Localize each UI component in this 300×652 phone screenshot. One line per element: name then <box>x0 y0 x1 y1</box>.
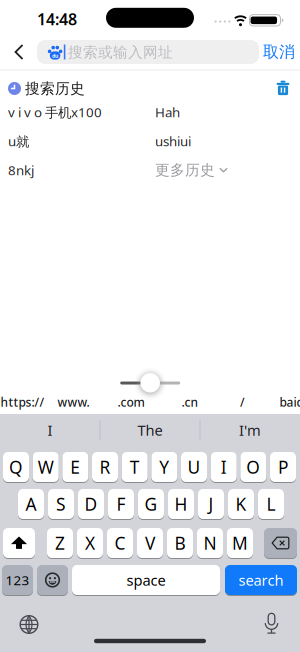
button[interactable]: I'm <box>202 416 298 444</box>
button[interactable]: G <box>138 489 164 519</box>
staticText: L <box>266 492 275 515</box>
button[interactable]: https:// <box>0 394 44 410</box>
button[interactable]: ushiui <box>155 129 295 153</box>
staticText: H <box>174 492 187 515</box>
staticText: J <box>208 492 213 515</box>
button[interactable]: baidu.com <box>279 394 300 410</box>
staticText: 更多历史 <box>155 161 215 179</box>
button[interactable]: J <box>198 489 224 519</box>
button[interactable]: search <box>225 565 297 595</box>
staticText: X <box>85 531 95 554</box>
button[interactable]: www. <box>57 394 89 410</box>
staticText: www. <box>57 394 89 410</box>
button[interactable]: Hah <box>155 100 295 124</box>
staticText: I'm <box>239 420 261 440</box>
staticText: P <box>278 455 288 478</box>
button[interactable]: .cn <box>181 394 198 410</box>
button[interactable]: P <box>270 452 296 482</box>
staticText: F <box>116 492 125 515</box>
staticText: 搜索或输入网址 <box>68 43 173 61</box>
staticText: V <box>145 531 155 554</box>
button[interactable]: Shift <box>3 528 35 558</box>
staticText: G <box>144 492 157 515</box>
button[interactable]: / <box>240 394 245 410</box>
button[interactable]: Q <box>3 452 29 482</box>
staticText: U <box>187 455 200 478</box>
staticText: 14:48 <box>37 8 77 30</box>
staticText: W <box>38 455 54 478</box>
staticText: Z <box>55 531 65 554</box>
staticText: T <box>130 455 140 478</box>
staticText: The <box>137 420 162 440</box>
staticText: C <box>114 531 125 554</box>
button[interactable]: Dictate <box>256 608 286 638</box>
staticText: I <box>47 420 52 440</box>
staticText: R <box>99 455 110 478</box>
staticText: D <box>84 492 97 515</box>
button[interactable]: du <box>37 40 259 64</box>
staticText: / <box>240 394 245 410</box>
button[interactable]: I <box>2 416 98 444</box>
button[interactable]: O <box>240 452 266 482</box>
staticText: baidu.com <box>279 394 300 410</box>
staticText: u就 <box>8 132 29 150</box>
button[interactable]: 取消 <box>259 38 299 66</box>
staticText: O <box>246 455 260 478</box>
button[interactable]: D <box>78 489 104 519</box>
staticText: N <box>203 531 216 554</box>
button[interactable]: Slider <box>110 371 190 395</box>
staticText: ushiui <box>155 132 191 150</box>
button[interactable]: X <box>77 528 103 558</box>
button[interactable]: u就 <box>8 129 148 153</box>
staticText: 取消 <box>263 42 295 62</box>
staticText: 123 <box>5 571 29 589</box>
staticText: https:// <box>0 394 44 410</box>
button[interactable]: Back <box>7 38 31 66</box>
staticText: search <box>238 570 283 590</box>
button[interactable]: E <box>62 452 88 482</box>
staticText: Hah <box>155 103 180 121</box>
button[interactable]: L <box>258 489 284 519</box>
button[interactable]: A <box>18 489 44 519</box>
button[interactable]: U <box>181 452 207 482</box>
button[interactable]: 更多历史 <box>155 158 295 182</box>
button[interactable]: space <box>72 565 220 595</box>
button[interactable]: N <box>197 528 223 558</box>
button[interactable]: V <box>137 528 163 558</box>
staticText: v i v o 手机x100 <box>8 103 102 121</box>
button[interactable]: H <box>168 489 194 519</box>
staticText: S <box>56 492 66 515</box>
button[interactable]: Clear history <box>271 76 295 100</box>
staticText: Q <box>9 455 23 478</box>
button[interactable]: Z <box>47 528 73 558</box>
button[interactable]: T <box>122 452 148 482</box>
button[interactable]: Delete <box>264 528 297 558</box>
button[interactable]: K <box>228 489 254 519</box>
staticText: B <box>174 531 185 554</box>
staticText: K <box>235 492 246 515</box>
button[interactable]: 8nkj <box>8 158 148 182</box>
staticText: 搜索历史 <box>25 79 85 97</box>
button[interactable]: Emoji <box>37 565 68 595</box>
button[interactable]: Y <box>151 452 177 482</box>
button[interactable]: I <box>211 452 237 482</box>
staticText: .com <box>117 394 144 410</box>
staticText: Y <box>159 455 169 478</box>
button[interactable]: C <box>107 528 133 558</box>
button[interactable]: .com <box>117 394 144 410</box>
button[interactable]: M <box>227 528 253 558</box>
button[interactable]: W <box>33 452 59 482</box>
staticText: I <box>221 455 227 478</box>
button[interactable]: 123 <box>2 565 33 595</box>
button[interactable]: S <box>48 489 74 519</box>
staticText: E <box>70 455 80 478</box>
button[interactable]: R <box>92 452 118 482</box>
button[interactable]: The <box>102 416 198 444</box>
button[interactable]: F <box>108 489 134 519</box>
button[interactable]: v i v o 手机x100 <box>8 100 148 124</box>
staticText: M <box>232 531 248 554</box>
staticText: A <box>25 492 36 515</box>
button[interactable]: B <box>167 528 193 558</box>
staticText: du <box>52 52 58 59</box>
button[interactable]: Next keyboard <box>14 609 44 639</box>
